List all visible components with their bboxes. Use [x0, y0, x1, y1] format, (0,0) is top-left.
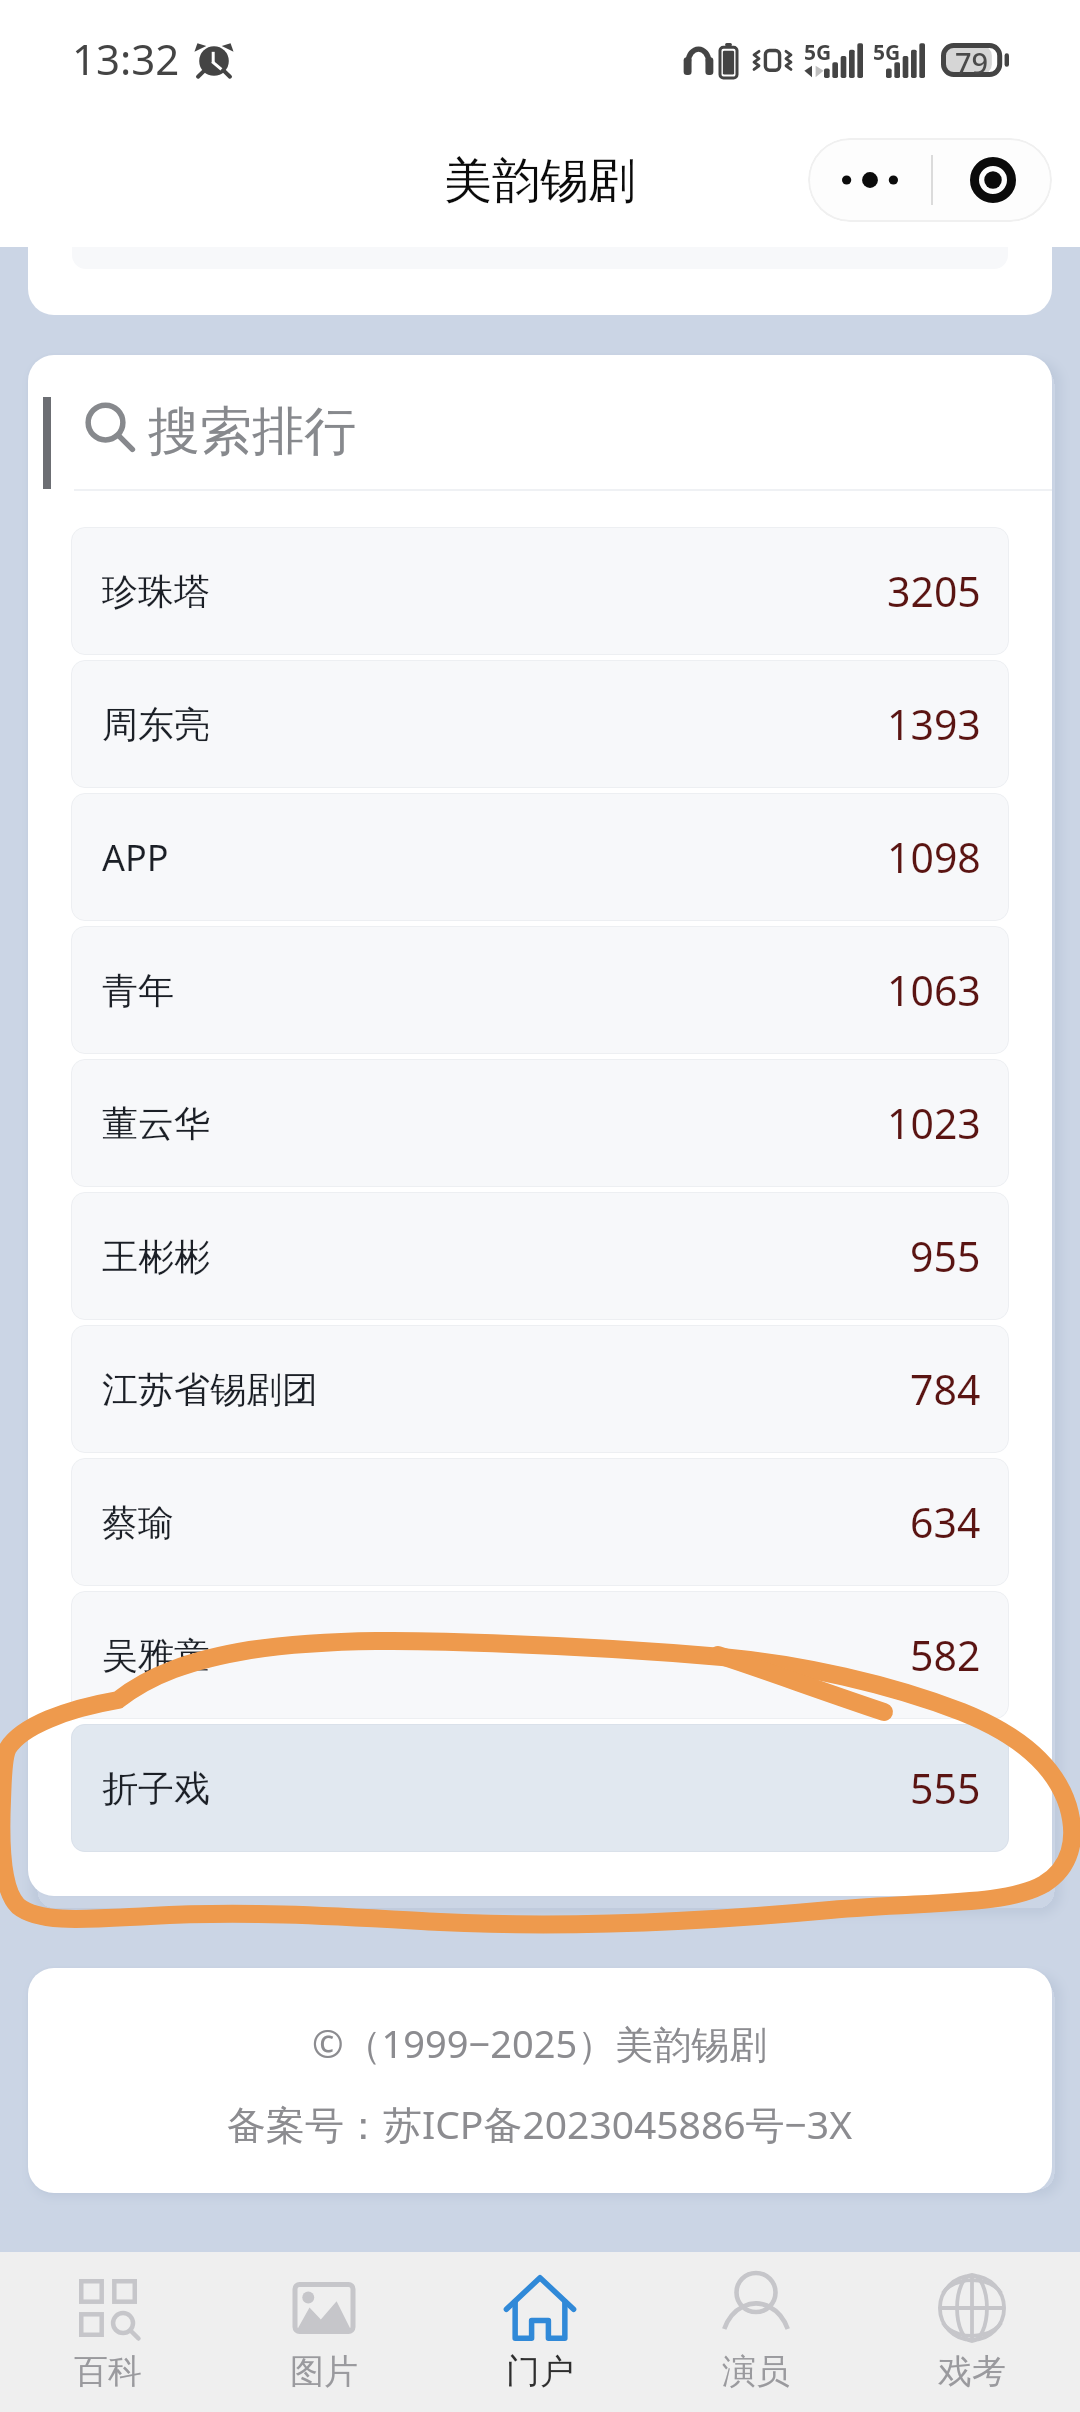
button[interactable]: 门户: [432, 2252, 648, 2412]
button[interactable]: 蔡瑜: [71, 1458, 1009, 1586]
button[interactable]: 折子戏: [71, 1724, 1009, 1852]
staticText: 吴雅童: [102, 1633, 210, 1678]
button[interactable]: 图片: [216, 2252, 432, 2412]
button[interactable]: 青年: [71, 926, 1009, 1054]
button[interactable]: 董云华: [71, 1059, 1009, 1187]
staticText: 784: [910, 1361, 981, 1417]
staticText: 582: [910, 1627, 981, 1683]
button[interactable]: 演员: [648, 2252, 864, 2412]
button[interactable]: 王彬彬: [71, 1192, 1009, 1320]
staticText: 珍珠塔: [102, 569, 210, 614]
staticText: 周东亮: [102, 702, 210, 747]
staticText: 江苏省锡剧团: [102, 1367, 318, 1412]
button[interactable]: 百科: [0, 2252, 216, 2412]
staticText: 搜索排行: [148, 399, 356, 465]
staticText: 王彬彬: [102, 1234, 210, 1279]
other: Close mini program: [933, 138, 1052, 222]
staticText: 5G: [873, 38, 901, 67]
button[interactable]: APP: [71, 793, 1009, 921]
staticText: 1098: [887, 829, 981, 885]
staticText: 13:32: [72, 30, 180, 87]
button[interactable]: 吴雅童: [71, 1591, 1009, 1719]
staticText: 5G: [804, 38, 832, 67]
staticText: 百科: [74, 2350, 142, 2393]
staticText: 备案号：苏ICP备2023045886号−3X: [227, 2097, 853, 2150]
staticText: 1023: [887, 1095, 981, 1151]
staticText: 演员: [722, 2350, 790, 2393]
staticText: APP: [102, 833, 169, 882]
button[interactable]: 珍珠塔: [71, 527, 1009, 655]
button[interactable]: 搜索排行: [28, 355, 1052, 489]
staticText: 蔡瑜: [102, 1500, 174, 1545]
staticText: 1063: [887, 962, 981, 1018]
staticText: 门户: [506, 2350, 574, 2393]
staticText: 折子戏: [102, 1766, 210, 1811]
button[interactable]: 江苏省锡剧团: [71, 1325, 1009, 1453]
staticText: 美韵锡剧: [444, 151, 636, 211]
button[interactable]: More options: [808, 138, 1052, 222]
staticText: 955: [910, 1228, 981, 1284]
staticText: 董云华: [102, 1101, 210, 1146]
staticText: 555: [910, 1760, 981, 1816]
other: More options: [808, 138, 931, 222]
staticText: ©（1999−2025）美韵锡剧: [312, 2017, 768, 2069]
staticText: 79: [955, 43, 989, 77]
staticText: 634: [910, 1494, 981, 1550]
staticText: 3205: [887, 563, 981, 619]
button[interactable]: 戏考: [864, 2252, 1080, 2412]
staticText: 图片: [290, 2350, 358, 2393]
staticText: 青年: [102, 968, 174, 1013]
staticText: 1393: [887, 696, 981, 752]
button[interactable]: 周东亮: [71, 660, 1009, 788]
staticText: 戏考: [938, 2350, 1006, 2393]
